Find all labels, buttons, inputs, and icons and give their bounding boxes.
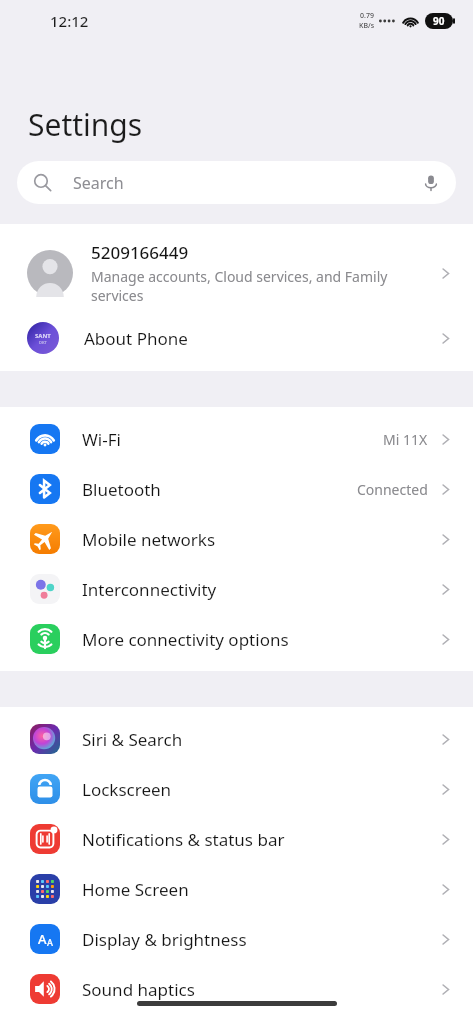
staticText: About Phone bbox=[84, 327, 438, 350]
staticText: 12:12 bbox=[50, 11, 89, 31]
staticText: Manage accounts, Cloud services, and Fam… bbox=[91, 267, 428, 305]
button[interactable]: Notifications & status bar bbox=[0, 814, 473, 864]
button[interactable]: 5209166449 bbox=[0, 224, 473, 313]
staticText: 0.79 bbox=[360, 11, 374, 21]
button[interactable]: Search bbox=[17, 161, 456, 204]
button[interactable]: Bluetooth bbox=[0, 464, 473, 514]
staticText: Mi 11X bbox=[383, 430, 428, 449]
button[interactable]: Interconnectivity bbox=[0, 564, 473, 614]
staticText: DKT bbox=[39, 340, 47, 345]
button[interactable]: Siri & Search bbox=[0, 714, 473, 764]
staticText: Notifications & status bar bbox=[82, 828, 438, 851]
staticText: Search bbox=[73, 172, 124, 194]
button[interactable]: Mobile networks bbox=[0, 514, 473, 564]
button[interactable]: More connectivity options bbox=[0, 614, 473, 664]
other: Voice search bbox=[422, 174, 440, 192]
staticText: Mobile networks bbox=[82, 528, 438, 551]
staticText: Siri & Search bbox=[82, 728, 438, 751]
staticText: A bbox=[47, 936, 53, 948]
staticText: Connected bbox=[357, 480, 428, 499]
button[interactable]: Lockscreen bbox=[0, 764, 473, 814]
staticText: 5209166449 bbox=[91, 241, 189, 264]
staticText: More connectivity options bbox=[82, 628, 438, 651]
staticText: Display & brightness bbox=[82, 928, 438, 951]
staticText: 90 bbox=[433, 14, 445, 28]
staticText: SANT bbox=[35, 332, 51, 340]
staticText: Wi-Fi bbox=[82, 428, 383, 451]
button[interactable]: Home Screen bbox=[0, 864, 473, 914]
staticText: Settings bbox=[28, 104, 143, 145]
button[interactable]: Wi-Fi bbox=[0, 414, 473, 464]
staticText: Bluetooth bbox=[82, 478, 357, 501]
button[interactable]: A bbox=[0, 914, 473, 964]
staticText: Lockscreen bbox=[82, 778, 438, 801]
staticText: A bbox=[38, 930, 47, 948]
staticText: Home Screen bbox=[82, 878, 438, 901]
button[interactable]: SANT bbox=[0, 313, 473, 363]
staticText: KB/s bbox=[359, 21, 375, 31]
button[interactable]: Sound haptics bbox=[0, 964, 473, 1014]
staticText: Interconnectivity bbox=[82, 578, 438, 601]
staticText: Sound haptics bbox=[82, 978, 438, 1001]
